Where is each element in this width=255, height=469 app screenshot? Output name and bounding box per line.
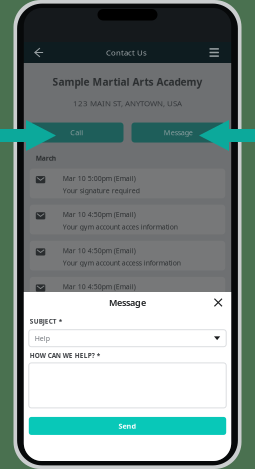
staticText: SUBJECT *	[30, 317, 62, 326]
button[interactable]: Call	[30, 122, 123, 142]
button[interactable]: Back	[27, 42, 51, 63]
staticText: March	[36, 153, 56, 163]
button[interactable]: Close	[209, 293, 227, 311]
button[interactable]: Mar 10 4:50pm (Email)	[30, 241, 225, 270]
button[interactable]: Help	[29, 330, 226, 347]
button[interactable]: Mar 10 4:50pm (Email)	[30, 277, 225, 307]
button[interactable]: Menu	[202, 42, 226, 63]
button[interactable]: Mar 10 5:00pm (Email)	[30, 169, 225, 198]
staticText: Your gym account access information	[63, 294, 181, 304]
staticText: Call	[70, 128, 83, 137]
staticText: Mar 10 4:50pm (Email)	[63, 210, 136, 219]
staticText: Your gym account acces information	[63, 222, 178, 231]
staticText: Sample Martial Arts Academy	[52, 75, 202, 89]
staticText: Your signature required	[63, 186, 140, 195]
staticText: HOW CAN WE HELP? *	[30, 351, 100, 360]
staticText: Your gym account access information	[63, 258, 181, 268]
button[interactable]	[29, 363, 226, 408]
staticText: Message	[164, 128, 193, 137]
button[interactable]: Mar 10 4:50pm (Email)	[30, 205, 225, 234]
staticText: Mar 10 4:50pm (Email)	[63, 282, 136, 291]
staticText: Send	[118, 421, 136, 431]
button[interactable]: Message	[131, 122, 225, 142]
staticText: Contact Us	[106, 47, 147, 58]
staticText: Message	[109, 296, 146, 309]
staticText: Help	[35, 333, 50, 343]
button[interactable]: Send	[29, 417, 226, 435]
staticText: 123 MAIN ST, ANYTOWN, USA	[73, 98, 182, 108]
staticText: Mar 10 4:50pm (Email)	[63, 246, 136, 255]
staticText: Mar 10 5:00pm (Email)	[63, 174, 136, 183]
